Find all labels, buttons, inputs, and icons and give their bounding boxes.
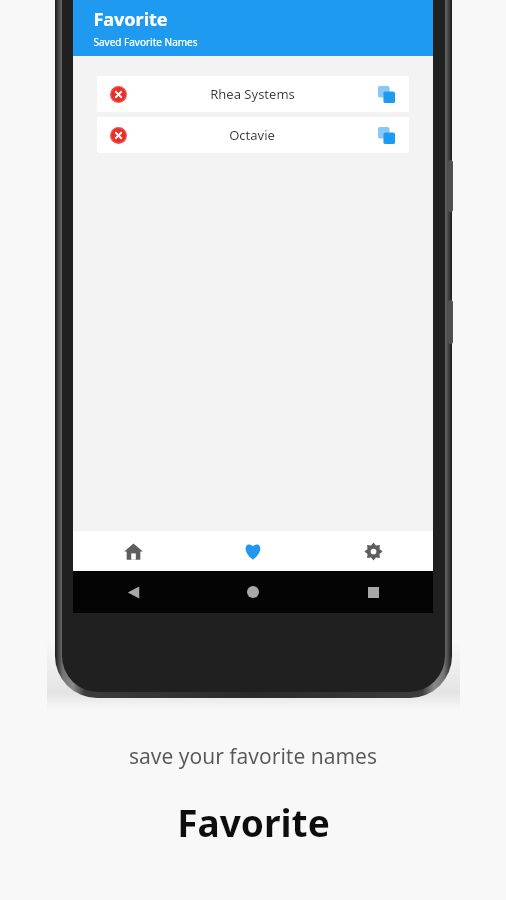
button[interactable]: Remove Rhea Systems [97, 76, 409, 112]
button[interactable]: Copy Rhea Systems [372, 80, 400, 108]
button[interactable]: Favorites [193, 531, 313, 571]
button[interactable]: Settings [313, 531, 433, 571]
button[interactable]: Home [73, 531, 193, 571]
staticText: save your favorite names [129, 742, 377, 771]
button[interactable]: Remove Rhea Systems [104, 80, 132, 108]
button[interactable]: Recent apps [313, 571, 433, 613]
button[interactable]: Remove Octavie [104, 121, 132, 149]
staticText: Favorite [177, 797, 330, 847]
staticText: Octavie [229, 126, 275, 144]
staticText: Favorite [93, 7, 168, 32]
button[interactable]: Home [193, 571, 313, 613]
button[interactable]: Back [73, 571, 193, 613]
button[interactable]: Remove Octavie [97, 117, 409, 153]
button[interactable]: Copy Octavie [372, 121, 400, 149]
staticText: Saved Favorite Names [93, 35, 198, 49]
staticText: Rhea Systems [210, 85, 295, 103]
